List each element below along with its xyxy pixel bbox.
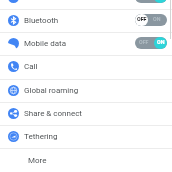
button[interactable]: Turn off xyxy=(135,37,167,49)
button[interactable]: Bluetooth xyxy=(0,12,172,28)
staticText: Bluetooth xyxy=(24,16,59,25)
button[interactable]: Tethering xyxy=(0,128,172,144)
button[interactable]: Share & connect xyxy=(0,105,172,121)
staticText: Tethering xyxy=(24,132,58,141)
staticText: OFF xyxy=(139,39,149,45)
button[interactable]: Mobile data xyxy=(0,35,172,51)
button[interactable]: Global roaming xyxy=(0,82,172,98)
staticText: ON xyxy=(153,16,161,22)
staticText: Global roaming xyxy=(24,86,79,95)
staticText: Share & connect xyxy=(24,109,82,118)
staticText: Call xyxy=(24,62,38,71)
button[interactable]: Turn off xyxy=(135,0,167,3)
button[interactable]: Call xyxy=(0,58,172,74)
button[interactable]: More xyxy=(0,152,172,168)
button[interactable]: Turn on xyxy=(135,14,167,26)
staticText: Mobile data xyxy=(24,39,66,48)
staticText: OFF xyxy=(137,16,147,22)
staticText: More xyxy=(28,156,47,165)
button[interactable]: Turn off xyxy=(0,0,172,5)
staticText: ON xyxy=(157,39,165,45)
